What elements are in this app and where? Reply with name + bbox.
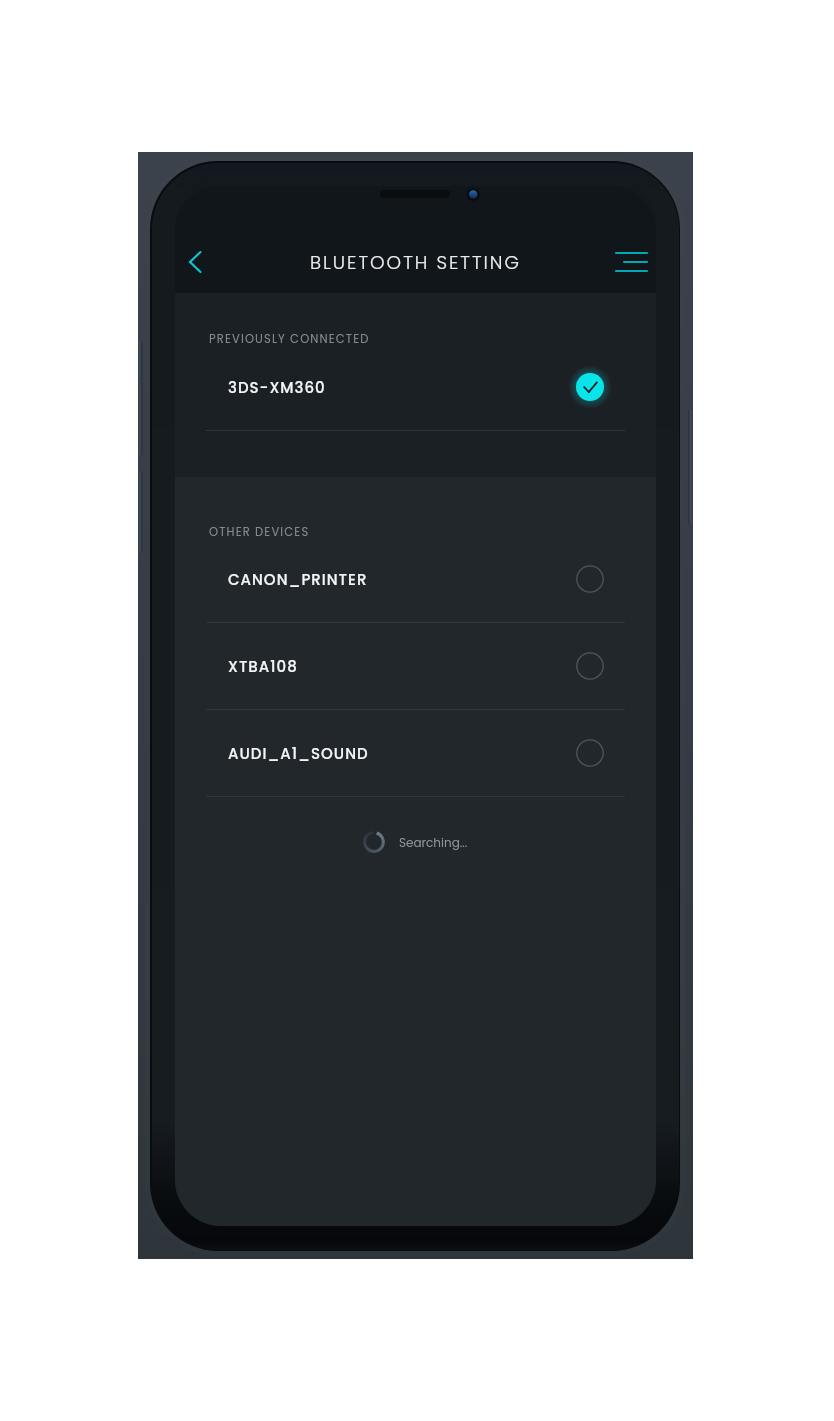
button[interactable]: AUDI_A1_SOUND — [175, 725, 656, 781]
staticText: 3DS-XM360 — [228, 377, 326, 398]
staticText: PREVIOUSLY CONNECTED — [209, 331, 370, 347]
button[interactable]: Menu — [608, 240, 652, 284]
staticText: BLUETOOTH SETTING — [310, 250, 521, 276]
button[interactable]: 3DS-XM360 — [175, 359, 656, 415]
button[interactable]: CANON_PRINTER — [175, 551, 656, 607]
staticText: CANON_PRINTER — [228, 569, 368, 590]
button[interactable]: XTBA108 — [175, 638, 656, 694]
button[interactable]: Back — [175, 240, 217, 284]
staticText: XTBA108 — [228, 656, 298, 677]
staticText: AUDI_A1_SOUND — [228, 743, 369, 764]
staticText: Searching... — [399, 834, 468, 851]
staticText: OTHER DEVICES — [209, 524, 310, 540]
